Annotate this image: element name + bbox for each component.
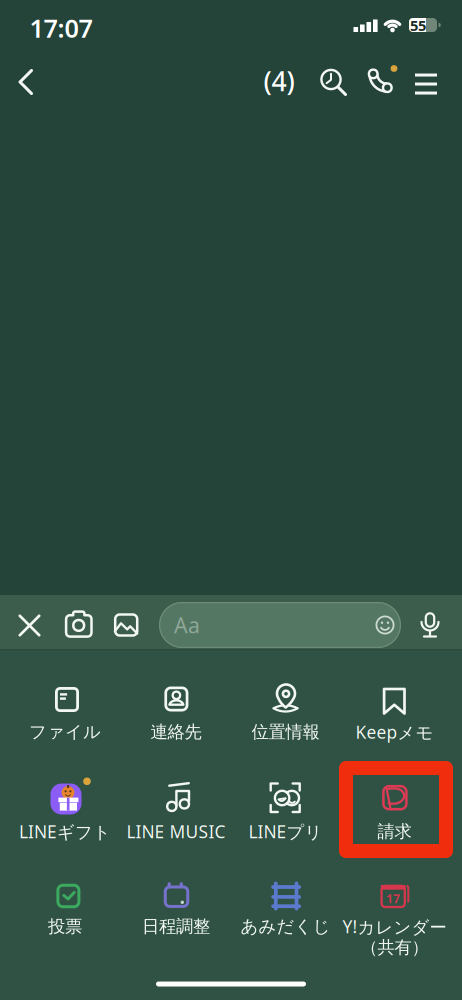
staticText: 17 (386, 890, 400, 906)
button[interactable]: LINEプリ (0, 0, 462, 1000)
staticText: 日程調整 (142, 916, 210, 937)
button[interactable]: Message (0, 0, 462, 1000)
staticText: Aa (174, 611, 200, 639)
staticText: LINE MUSIC (126, 820, 225, 843)
button[interactable]: Menu (0, 0, 462, 1000)
staticText: 位置情報 (251, 721, 319, 743)
staticText: LINEギフト (19, 820, 111, 843)
staticText: 連絡先 (150, 721, 201, 743)
button[interactable]: 位置情報 (0, 0, 462, 1000)
button[interactable]: あみだくじ (0, 0, 462, 1000)
staticText: 請求 (377, 821, 411, 842)
button[interactable]: LINE MUSIC (0, 0, 462, 1000)
button[interactable]: Voice message (0, 0, 462, 1000)
button[interactable]: Back (0, 0, 462, 1000)
button[interactable]: ファイル (0, 0, 462, 1000)
button[interactable]: 投票 (0, 0, 462, 1000)
staticText: Keepメモ (355, 720, 433, 743)
staticText: ファイル (29, 721, 101, 743)
button[interactable]: Keepメモ (0, 0, 462, 1000)
button[interactable]: LINEギフト (0, 0, 462, 1000)
button[interactable]: 17 (0, 0, 462, 1000)
staticText: （共有） (360, 937, 428, 958)
staticText: 17:07 (29, 11, 92, 45)
button[interactable]: 日程調整 (0, 0, 462, 1000)
button[interactable]: Close attachment menu (0, 0, 462, 1000)
button[interactable]: Camera (0, 0, 462, 1000)
button[interactable]: Photos (0, 0, 462, 1000)
button[interactable]: Call (0, 0, 462, 1000)
staticText: LINEプリ (248, 820, 322, 843)
button[interactable]: 請求 (0, 0, 462, 1000)
button[interactable]: Search (0, 0, 462, 1000)
staticText: (4) (263, 63, 294, 99)
staticText: 55 (410, 15, 426, 35)
staticText: あみだくじ (240, 916, 330, 937)
staticText: 投票 (48, 916, 82, 937)
staticText: Y!カレンダー (342, 915, 446, 938)
button[interactable]: 連絡先 (0, 0, 462, 1000)
